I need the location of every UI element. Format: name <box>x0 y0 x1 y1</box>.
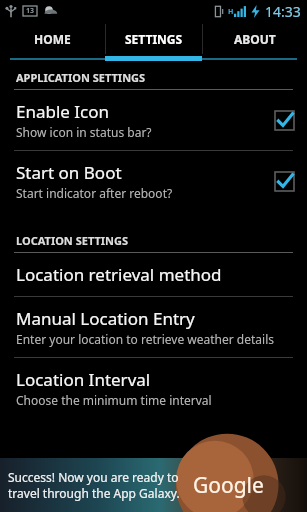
staticText: APPLICATION SETTINGS <box>16 70 146 85</box>
staticText: 14:33 <box>265 2 301 21</box>
button[interactable]: Toggle setting <box>273 170 295 192</box>
button[interactable]: Toggle setting <box>273 109 295 131</box>
staticText: Location retrieval method <box>16 263 222 286</box>
staticText: Success! Now you are ready to <box>8 469 179 485</box>
staticText: Google <box>193 471 264 500</box>
staticText: Enable Icon <box>16 100 110 123</box>
button[interactable]: ABOUT <box>203 22 307 56</box>
button[interactable]: HOME <box>0 22 105 56</box>
staticText: H <box>228 7 234 17</box>
staticText: SETTINGS <box>125 31 183 47</box>
button[interactable]: Enable Icon <box>0 90 307 150</box>
staticText: HOME <box>34 31 71 47</box>
staticText: Choose the minimum time interval <box>16 392 212 408</box>
button[interactable]: Start on Boot <box>0 151 307 211</box>
button[interactable]: Location retrieval method <box>0 253 307 296</box>
staticText: 13 <box>26 6 35 16</box>
button[interactable]: Location Interval <box>0 358 307 418</box>
button[interactable]: Advertisement <box>0 458 307 512</box>
staticText: Location Interval <box>16 368 151 391</box>
staticText: Manual Location Entry <box>16 307 195 330</box>
staticText: Start on Boot <box>16 161 122 184</box>
staticText: travel through the App Galaxy. <box>8 485 180 501</box>
staticText: Enter your location to retrieve weather … <box>16 331 274 347</box>
staticText: Start indicator after reboot? <box>16 185 173 201</box>
button[interactable]: Manual Location Entry <box>0 297 307 357</box>
staticText: LOCATION SETTINGS <box>16 233 129 248</box>
staticText: Show icon in status bar? <box>16 124 152 140</box>
button[interactable]: SETTINGS <box>106 22 202 56</box>
staticText: ABOUT <box>234 31 276 47</box>
